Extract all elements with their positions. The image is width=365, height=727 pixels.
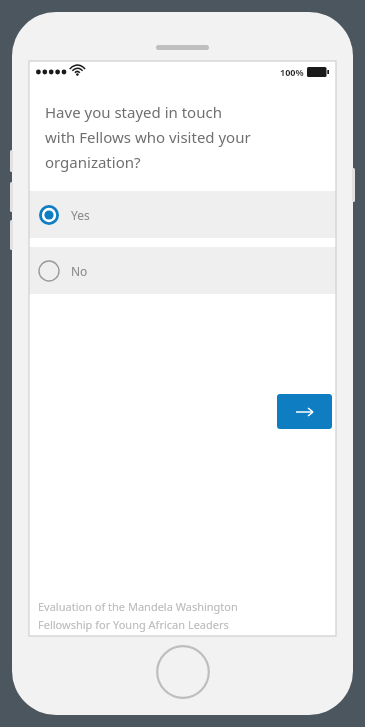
button[interactable]: Next [277, 394, 332, 429]
staticText: Have you stayed in touch with Fellows wh… [45, 102, 251, 172]
staticText: 100% [280, 66, 304, 78]
staticText: Evaluation of the Mandela Washington Fel… [38, 599, 238, 632]
staticText: No [71, 263, 88, 279]
staticText: Yes [71, 207, 90, 223]
button[interactable]: No [29, 247, 336, 294]
button[interactable]: Yes [29, 191, 336, 238]
